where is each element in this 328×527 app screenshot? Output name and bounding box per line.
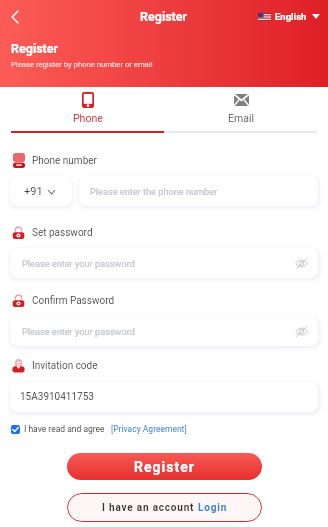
button[interactable]: +91: [10, 176, 72, 206]
staticText: Please enter your password: [22, 258, 135, 269]
staticText: I have read and agree: [24, 424, 105, 434]
button[interactable]: Please enter your password: [10, 248, 318, 278]
staticText: I have an account: [102, 502, 198, 514]
staticText: Register: [11, 41, 59, 56]
staticText: Set password: [32, 227, 93, 239]
staticText: Invitation code: [32, 360, 98, 372]
button[interactable]: Email: [164, 87, 317, 133]
staticText: Email: [228, 112, 254, 124]
button[interactable]: English: [258, 11, 320, 22]
staticText: Please enter the phone number: [90, 186, 218, 197]
button[interactable]: Show password: [292, 254, 310, 272]
button[interactable]: I have an account: [67, 493, 262, 522]
button[interactable]: [Privacy Agreement]: [111, 424, 187, 434]
button[interactable]: Agree to privacy agreement: [11, 425, 20, 434]
button[interactable]: Back: [3, 5, 27, 29]
staticText: Login: [198, 502, 228, 514]
button[interactable]: Please enter the phone number: [79, 176, 318, 206]
staticText: Phone: [73, 112, 103, 124]
button[interactable]: Show password: [292, 322, 310, 340]
staticText: +91: [24, 185, 43, 198]
staticText: 15A3910411753: [20, 391, 94, 403]
staticText: Register: [134, 459, 195, 475]
staticText: Please enter your password: [22, 326, 135, 337]
staticText: Confirm Password: [32, 295, 115, 307]
button[interactable]: Register: [67, 453, 262, 480]
staticText: English: [275, 11, 307, 22]
button[interactable]: Please enter your password: [10, 316, 318, 346]
button[interactable]: 15A3910411753: [10, 382, 318, 412]
staticText: Register: [140, 9, 188, 24]
staticText: Phone number: [32, 155, 97, 167]
button[interactable]: Phone: [11, 87, 164, 133]
staticText: Please register by phone number or email: [11, 60, 153, 69]
